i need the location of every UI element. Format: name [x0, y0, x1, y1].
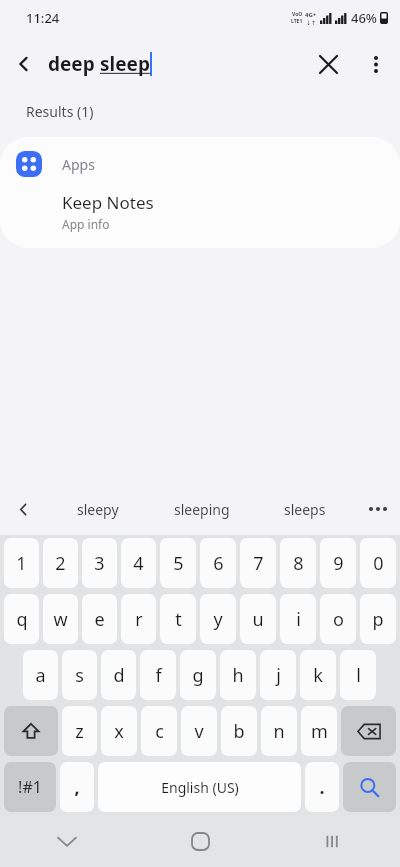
- button[interactable]: 4: [121, 538, 156, 588]
- button[interactable]: Apps: [0, 137, 400, 248]
- button[interactable]: s: [62, 650, 97, 700]
- button[interactable]: 8: [280, 538, 316, 588]
- button[interactable]: l: [340, 650, 376, 700]
- button[interactable]: w: [43, 594, 78, 644]
- staticText: Results (1): [26, 102, 94, 121]
- button[interactable]: j: [260, 650, 296, 700]
- button[interactable]: Previous suggestions: [0, 483, 46, 535]
- button[interactable]: q: [4, 594, 39, 644]
- button[interactable]: 3: [82, 538, 117, 588]
- staticText: c: [155, 719, 164, 744]
- staticText: VoO: [292, 11, 303, 18]
- button[interactable]: b: [221, 706, 257, 756]
- button[interactable]: t: [160, 594, 196, 644]
- staticText: Apps: [62, 155, 95, 174]
- staticText: n: [273, 719, 285, 744]
- staticText: p: [372, 607, 384, 632]
- button[interactable]: f: [140, 650, 176, 700]
- button[interactable]: Search: [343, 762, 396, 812]
- staticText: English (US): [161, 778, 239, 797]
- button[interactable]: Hide keyboard: [0, 815, 134, 867]
- button[interactable]: n: [261, 706, 297, 756]
- button[interactable]: ,: [60, 762, 94, 812]
- button[interactable]: sleeps: [253, 483, 356, 535]
- staticText: i: [296, 607, 301, 632]
- staticText: m: [311, 719, 328, 744]
- button[interactable]: Back: [0, 40, 48, 88]
- button[interactable]: v: [181, 706, 217, 756]
- staticText: sleep: [100, 51, 150, 77]
- staticText: 4: [133, 551, 144, 576]
- staticText: u: [252, 607, 264, 632]
- staticText: x: [114, 719, 124, 744]
- staticText: r: [135, 607, 143, 632]
- staticText: o: [333, 607, 344, 632]
- button[interactable]: Home: [134, 815, 267, 867]
- button[interactable]: x: [101, 706, 137, 756]
- staticText: 3: [94, 551, 105, 576]
- button[interactable]: Recent apps: [267, 815, 400, 867]
- button[interactable]: c: [141, 706, 177, 756]
- staticText: a: [35, 663, 46, 688]
- staticText: sleeps: [284, 500, 326, 519]
- staticText: t: [175, 607, 182, 632]
- staticText: 11:24: [26, 9, 60, 27]
- button[interactable]: English (US): [98, 762, 301, 812]
- button[interactable]: i: [280, 594, 316, 644]
- staticText: LTE1: [291, 18, 303, 25]
- staticText: h: [232, 663, 244, 688]
- button[interactable]: sleepy: [46, 483, 150, 535]
- button[interactable]: h: [220, 650, 256, 700]
- staticText: deep: [48, 51, 100, 77]
- button[interactable]: o: [320, 594, 356, 644]
- button[interactable]: m: [301, 706, 337, 756]
- button[interactable]: More options: [352, 40, 400, 88]
- button[interactable]: !#1: [4, 762, 56, 812]
- staticText: v: [194, 719, 204, 744]
- staticText: sleepy: [77, 500, 119, 519]
- staticText: 1: [16, 551, 27, 576]
- button[interactable]: z: [62, 706, 97, 756]
- button[interactable]: g: [180, 650, 216, 700]
- staticText: !#1: [18, 776, 42, 798]
- staticText: ,: [74, 775, 80, 800]
- staticText: sleeping: [174, 500, 230, 519]
- staticText: 2: [55, 551, 66, 576]
- button[interactable]: Clear: [304, 40, 352, 88]
- staticText: 6: [213, 551, 224, 576]
- button[interactable]: a: [23, 650, 58, 700]
- button[interactable]: y: [200, 594, 236, 644]
- button[interactable]: sleeping: [150, 483, 253, 535]
- button[interactable]: k: [300, 650, 336, 700]
- button[interactable]: p: [360, 594, 396, 644]
- staticText: g: [192, 663, 204, 688]
- staticText: f: [155, 663, 162, 688]
- staticText: .: [319, 775, 325, 800]
- staticText: 4G+: [305, 11, 317, 19]
- button[interactable]: 9: [320, 538, 356, 588]
- button[interactable]: Backspace: [341, 706, 396, 756]
- button[interactable]: d: [101, 650, 136, 700]
- staticText: 46%: [351, 9, 377, 27]
- staticText: z: [75, 719, 84, 744]
- button[interactable]: More suggestions: [356, 483, 400, 535]
- button[interactable]: u: [240, 594, 276, 644]
- button[interactable]: r: [121, 594, 156, 644]
- button[interactable]: e: [82, 594, 117, 644]
- staticText: s: [75, 663, 84, 688]
- staticText: 9: [333, 551, 344, 576]
- button[interactable]: 5: [160, 538, 196, 588]
- staticText: ↓↑: [306, 19, 317, 26]
- staticText: 5: [173, 551, 184, 576]
- button[interactable]: 2: [43, 538, 78, 588]
- button[interactable]: 7: [240, 538, 276, 588]
- button[interactable]: Shift: [4, 706, 58, 756]
- button[interactable]: 6: [200, 538, 236, 588]
- staticText: q: [16, 607, 28, 632]
- button[interactable]: 0: [360, 538, 396, 588]
- staticText: j: [276, 663, 281, 688]
- button[interactable]: .: [305, 762, 339, 812]
- staticText: d: [113, 663, 125, 688]
- button[interactable]: 1: [4, 538, 39, 588]
- staticText: l: [356, 663, 361, 688]
